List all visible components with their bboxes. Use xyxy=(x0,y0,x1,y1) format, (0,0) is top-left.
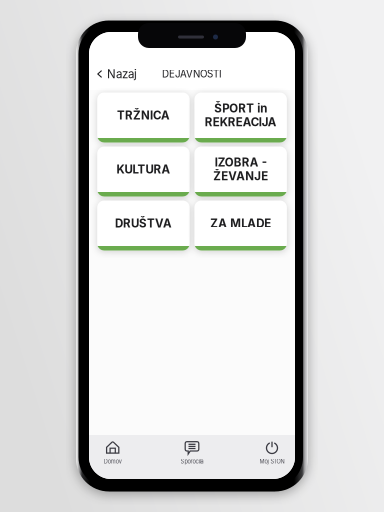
staticText: Domov xyxy=(104,458,122,465)
staticText: TRŽNICA xyxy=(117,108,170,122)
button[interactable]: IZOBRA - xyxy=(194,146,287,196)
staticText: REKREACIJA xyxy=(205,115,277,129)
staticText: ZA MLADE xyxy=(210,216,271,230)
button[interactable]: DRUŠTVA xyxy=(97,200,190,250)
staticText: IZOBRA - xyxy=(215,155,267,169)
staticText: DRUŠTVA xyxy=(115,216,172,230)
staticText: Sporočila xyxy=(180,458,203,465)
staticText: Moj SION xyxy=(259,458,284,465)
button[interactable]: Domov xyxy=(82,435,144,479)
staticText: ŠPORT in xyxy=(214,101,267,115)
staticText: Nazaj xyxy=(107,67,137,81)
button[interactable]: Nazaj xyxy=(89,60,145,86)
button[interactable]: Moj SION xyxy=(241,435,303,479)
staticText: ŽEVANJE xyxy=(213,169,268,183)
button[interactable]: TRŽNICA xyxy=(97,92,190,142)
button[interactable]: ZA MLADE xyxy=(194,200,287,250)
button[interactable]: ŠPORT in xyxy=(194,92,287,142)
button[interactable]: Sporočila xyxy=(161,435,223,479)
staticText: DEJAVNOSTI xyxy=(162,68,222,80)
staticText: KULTURA xyxy=(116,162,170,176)
button[interactable]: KULTURA xyxy=(97,146,190,196)
